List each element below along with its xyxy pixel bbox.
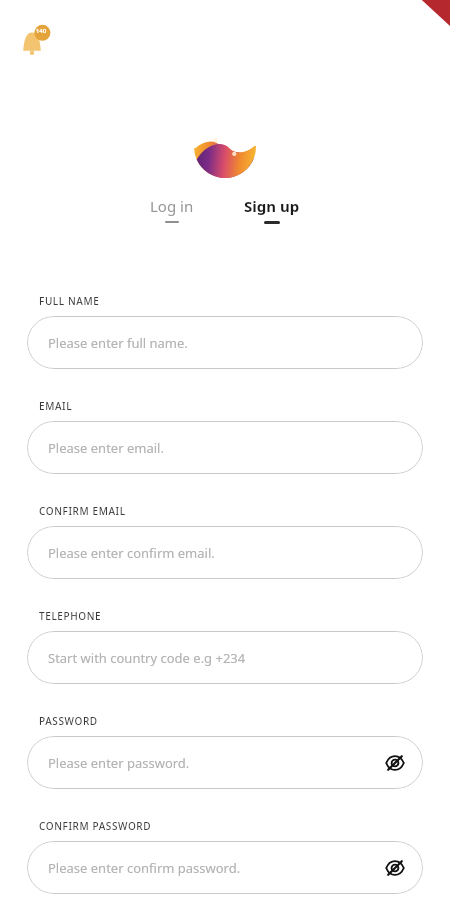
staticText: Please enter confirm email.: [48, 544, 215, 562]
staticText: CONFIRM PASSWORD: [39, 819, 152, 833]
staticText: FULL NAME: [39, 294, 100, 308]
button[interactable]: Please enter email.: [27, 421, 423, 474]
button[interactable]: Sign up: [240, 194, 304, 226]
staticText: Please enter confirm password.: [48, 859, 241, 877]
button[interactable]: Please enter full name.: [27, 316, 423, 369]
button[interactable]: Notifications, 140 unread: [16, 22, 56, 62]
button[interactable]: Please enter confirm email.: [27, 526, 423, 579]
button[interactable]: Please enter confirm password.: [27, 841, 423, 894]
staticText: 140: [34, 27, 48, 35]
staticText: Please enter full name.: [48, 334, 188, 352]
staticText: TELEPHONE: [39, 609, 102, 623]
staticText: Log in: [150, 196, 194, 216]
staticText: EMAIL: [39, 399, 73, 413]
staticText: Start with country code e.g +234: [48, 649, 246, 667]
staticText: Sign up: [244, 196, 300, 216]
staticText: CONFIRM EMAIL: [39, 504, 126, 518]
button[interactable]: Show password: [381, 854, 409, 882]
button[interactable]: Start with country code e.g +234: [27, 631, 423, 684]
staticText: Please enter password.: [48, 754, 190, 772]
button[interactable]: Log in: [146, 194, 198, 225]
button[interactable]: Please enter password.: [27, 736, 423, 789]
button[interactable]: Show password: [381, 749, 409, 777]
staticText: Please enter email.: [48, 439, 164, 457]
staticText: PASSWORD: [39, 714, 98, 728]
